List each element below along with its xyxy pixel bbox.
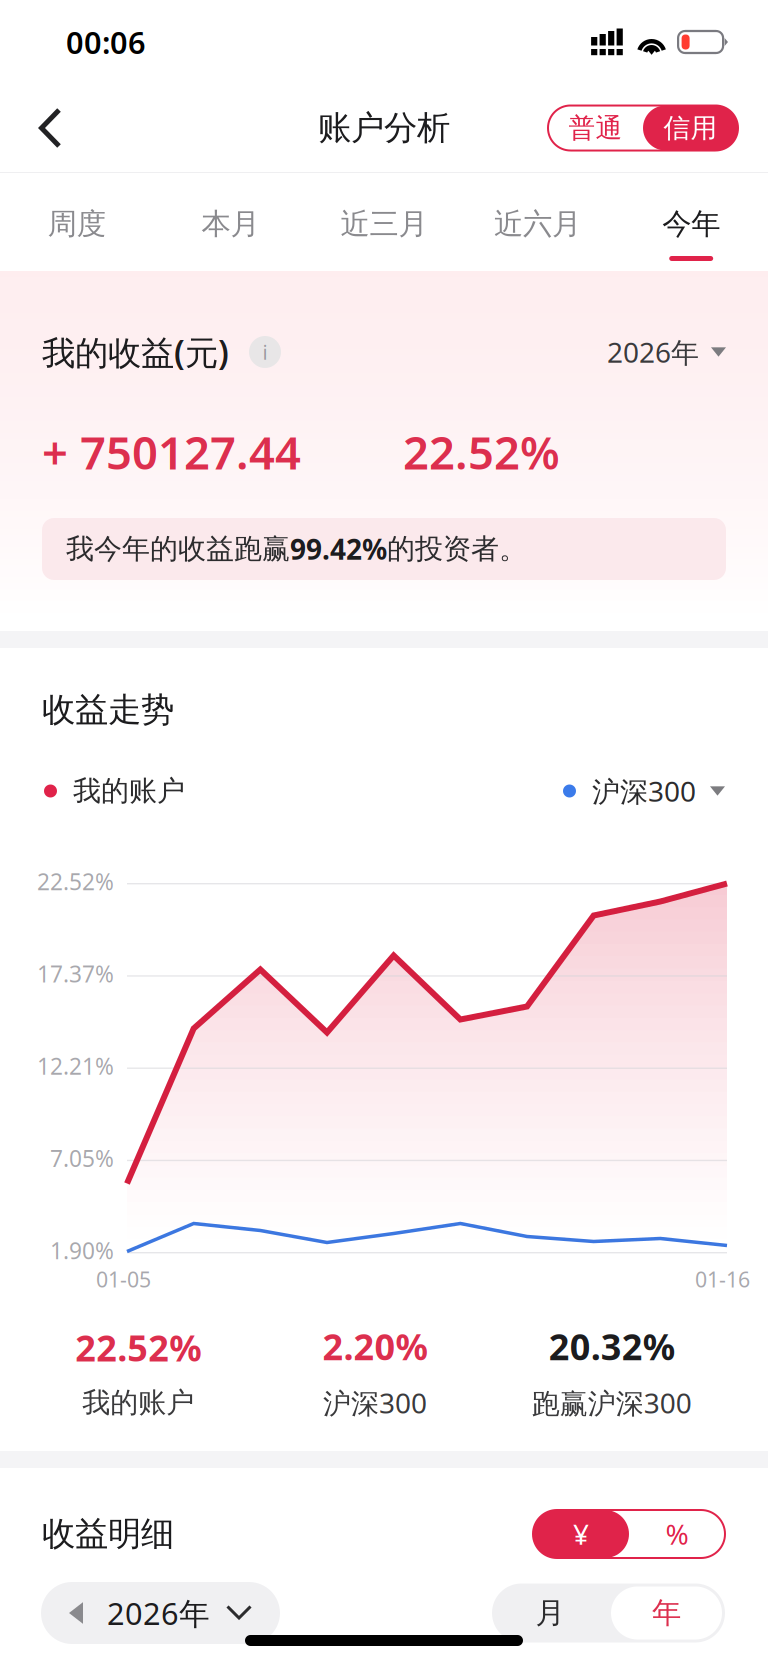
staticText: 我的账户 — [73, 774, 185, 808]
staticText: 本月 — [201, 206, 259, 242]
button[interactable]: 普通 — [548, 105, 643, 150]
staticText: 22.52% — [37, 866, 114, 896]
button[interactable]: 年 — [608, 1583, 725, 1642]
staticText: 信用 — [663, 112, 717, 144]
staticText: 01-05 — [96, 1265, 151, 1293]
staticText: 22.52% — [75, 1324, 201, 1371]
button[interactable]: % — [629, 1510, 725, 1558]
staticText: 跑赢沪深300 — [532, 1384, 692, 1421]
button[interactable]: 信用 — [643, 105, 738, 150]
staticText: 收益明细 — [42, 1513, 174, 1554]
staticText: 7.05% — [50, 1143, 114, 1173]
staticText: 12.21% — [37, 1051, 114, 1081]
staticText: % — [665, 1515, 688, 1553]
staticText: 99.42% — [290, 530, 387, 568]
staticText: 沪深300 — [592, 772, 696, 810]
button[interactable]: ¥ — [533, 1510, 629, 1558]
staticText: 账户分析 — [318, 107, 450, 148]
button[interactable]: 本月 — [154, 173, 307, 271]
staticText: 年 — [652, 1595, 681, 1631]
staticText: 月 — [535, 1595, 564, 1631]
button[interactable]: 2026年 — [41, 1582, 280, 1644]
staticText: 22.52% — [403, 422, 560, 482]
staticText: 收益走势 — [42, 689, 174, 730]
staticText: i — [262, 339, 267, 365]
button[interactable]: 今年 — [614, 173, 768, 271]
staticText: 我的账户 — [82, 1385, 194, 1420]
staticText: 今年 — [662, 206, 720, 242]
staticText: 周度 — [48, 206, 106, 242]
button[interactable]: 月 — [492, 1583, 608, 1642]
button[interactable]: 沪深300 — [563, 774, 725, 808]
button[interactable]: Info — [249, 336, 281, 368]
staticText: 我的收益(元) — [42, 330, 229, 374]
staticText: 普通 — [568, 112, 622, 144]
staticText: ¥ — [573, 1515, 589, 1553]
staticText: 00:06 — [66, 22, 146, 62]
staticText: 沪深300 — [323, 1384, 427, 1421]
staticText: 2026年 — [107, 1593, 210, 1633]
staticText: 20.32% — [549, 1322, 675, 1370]
button[interactable]: 2026年 — [607, 330, 726, 374]
staticText: 1.90% — [50, 1235, 114, 1265]
button[interactable]: 近三月 — [307, 173, 461, 271]
staticText: 的投资者。 — [387, 532, 527, 566]
staticText: 近六月 — [494, 206, 581, 242]
staticText: 17.37% — [37, 959, 114, 989]
button[interactable]: 近六月 — [461, 173, 614, 271]
button[interactable]: 周度 — [0, 173, 154, 271]
staticText: 2026年 — [607, 333, 699, 371]
staticText: 01-16 — [695, 1265, 750, 1293]
staticText: 2.20% — [322, 1322, 427, 1370]
staticText: 近三月 — [340, 206, 427, 242]
staticText: + 750127.44 — [42, 422, 301, 482]
staticText: 我今年的收益跑赢 — [66, 532, 290, 566]
button[interactable]: Back — [0, 84, 87, 172]
